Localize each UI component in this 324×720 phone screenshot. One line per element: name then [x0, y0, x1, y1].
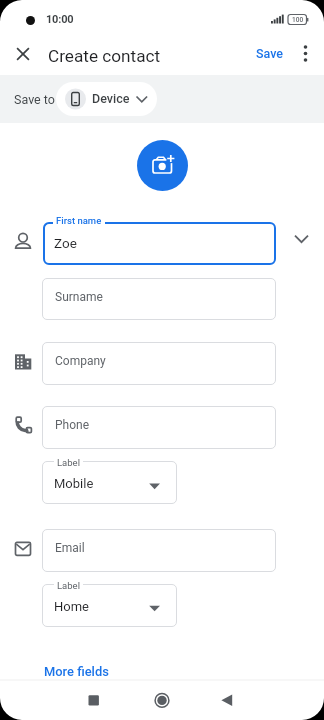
staticText: Label	[57, 457, 80, 468]
button[interactable]	[42, 278, 276, 320]
button[interactable]	[212, 686, 248, 712]
button[interactable]	[42, 584, 177, 627]
button[interactable]	[137, 140, 188, 191]
staticText: Create contact	[48, 46, 161, 66]
staticText: Zoe	[54, 235, 77, 251]
button[interactable]	[75, 686, 111, 712]
staticText: Device	[92, 91, 130, 106]
staticText: 10:00	[46, 13, 74, 26]
button[interactable]	[42, 406, 276, 449]
staticText: Label	[57, 580, 80, 591]
button[interactable]	[43, 222, 276, 265]
staticText: 100	[292, 16, 304, 24]
staticText: Save to	[14, 92, 55, 107]
staticText: More fields	[44, 664, 109, 679]
button[interactable]	[42, 461, 177, 504]
staticText: First name	[56, 215, 102, 226]
button[interactable]	[294, 40, 318, 66]
button[interactable]	[42, 529, 276, 572]
button[interactable]	[144, 686, 180, 712]
button[interactable]	[42, 342, 276, 385]
staticText: Email	[55, 541, 85, 555]
button[interactable]	[8, 39, 38, 69]
staticText: Phone	[55, 418, 90, 432]
staticText: Company	[55, 354, 106, 368]
staticText: Surname	[55, 290, 103, 304]
button[interactable]: Save	[248, 40, 288, 66]
staticText: Mobile	[54, 476, 94, 491]
staticText: Home	[54, 599, 89, 614]
button[interactable]: More fields	[36, 653, 120, 679]
button[interactable]: Device	[56, 82, 157, 116]
staticText: Save	[256, 46, 284, 61]
